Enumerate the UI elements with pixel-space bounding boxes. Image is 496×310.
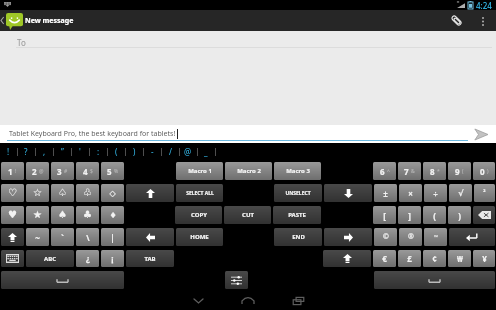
button[interactable]: ◇ [101, 184, 124, 202]
button[interactable] [324, 184, 372, 202]
button[interactable]: ¿ [76, 250, 99, 267]
button[interactable]: 4 [76, 162, 99, 180]
button[interactable]: @ [182, 143, 194, 160]
button[interactable]: \ [76, 228, 99, 246]
button[interactable]: 7 [398, 162, 421, 180]
button[interactable] [323, 250, 371, 267]
button[interactable]: ★ [26, 206, 49, 224]
button[interactable]: ± [374, 184, 397, 202]
button[interactable]: ♠ [51, 206, 74, 224]
button[interactable]: ♧ [76, 184, 99, 202]
button[interactable] [324, 228, 372, 246]
button[interactable]: CUT [224, 206, 271, 224]
staticText: £ [407, 253, 412, 264]
button[interactable]: Macro 3 [274, 162, 321, 180]
button[interactable]: × [399, 184, 422, 202]
button[interactable]: ( [110, 143, 122, 160]
button[interactable]: SELECT ALL [176, 184, 223, 202]
button[interactable]: ™ [424, 228, 447, 246]
button[interactable]: Hide keyboard [180, 291, 216, 310]
button[interactable]: ☆ [26, 184, 49, 202]
staticText: ” [61, 146, 64, 157]
button[interactable]: Recents [280, 291, 316, 310]
button[interactable]: 6 [373, 162, 396, 180]
button[interactable]: : [92, 143, 104, 160]
button[interactable]: 3 [51, 162, 74, 180]
button[interactable]: Attach [446, 10, 467, 31]
button[interactable]: 2 [26, 162, 49, 180]
button[interactable]: ? [20, 143, 32, 160]
button[interactable]: PASTE [273, 206, 321, 224]
button[interactable]: ® [399, 228, 422, 246]
staticText: ' [79, 146, 81, 157]
button[interactable]: Home [230, 291, 266, 310]
button[interactable]: ♤ [51, 184, 74, 202]
staticText: × [408, 188, 413, 199]
button[interactable]: 1 [1, 162, 24, 180]
button[interactable]: √ [449, 184, 472, 202]
button[interactable] [126, 228, 174, 246]
button[interactable]: ~ [26, 228, 49, 246]
button[interactable]: ABC [26, 250, 74, 267]
button[interactable] [1, 271, 124, 289]
button[interactable]: Macro 2 [225, 162, 272, 180]
button[interactable]: / [164, 143, 176, 160]
button[interactable]: HOME [176, 228, 223, 246]
button[interactable] [225, 271, 248, 289]
button[interactable]: 5 [101, 162, 124, 180]
button[interactable]: ♣ [76, 206, 99, 224]
button[interactable]: Back [0, 10, 5, 31]
button[interactable]: To [0, 37, 496, 47]
staticText: ☆ [33, 187, 42, 199]
button[interactable] [473, 206, 495, 224]
staticText: Macro 1 [188, 167, 212, 175]
button[interactable]: ♡ [1, 184, 24, 202]
button[interactable]: ` [51, 228, 74, 246]
button[interactable]: COPY [175, 206, 222, 224]
button[interactable]: 0 [473, 162, 495, 180]
button[interactable]: TAB [126, 250, 174, 267]
button[interactable]: ² [474, 184, 495, 202]
button[interactable]: , [38, 143, 50, 160]
button[interactable]: ¡ [101, 250, 124, 267]
button[interactable]: ÷ [424, 184, 447, 202]
button[interactable]: Macro 1 [176, 162, 223, 180]
button[interactable] [449, 228, 495, 246]
button[interactable]: ' [74, 143, 86, 160]
staticText: ) [487, 168, 489, 175]
button[interactable]: Send [467, 125, 495, 143]
staticText: ± [383, 188, 388, 199]
button[interactable]: UNSELECT [274, 184, 322, 202]
button[interactable]: ! [2, 143, 14, 160]
button[interactable]: ] [398, 206, 421, 224]
button[interactable]: ) [128, 143, 140, 160]
button[interactable]: ” [56, 143, 68, 160]
button[interactable]: More options [475, 13, 491, 29]
button[interactable]: ) [448, 206, 471, 224]
button[interactable]: ( [423, 206, 446, 224]
button[interactable] [126, 184, 174, 202]
button[interactable]: ¥ [473, 250, 495, 267]
button[interactable]: 8 [423, 162, 446, 180]
button[interactable]: - [146, 143, 158, 160]
button[interactable]: END [274, 228, 322, 246]
staticText: Macro 2 [237, 167, 261, 175]
button[interactable]: ¢ [423, 250, 446, 267]
staticText: 0 [480, 166, 485, 177]
button[interactable]: | [101, 228, 124, 246]
staticText: TAB [144, 255, 156, 263]
button[interactable] [1, 250, 24, 267]
button[interactable]: ♦ [101, 206, 124, 224]
button[interactable] [374, 271, 495, 289]
button[interactable]: £ [398, 250, 421, 267]
button[interactable]: _ [200, 143, 212, 160]
button[interactable]: [ [373, 206, 396, 224]
button[interactable]: € [373, 250, 396, 267]
button[interactable]: ♥ [1, 206, 24, 224]
button[interactable] [1, 228, 24, 246]
staticText: ♥ [8, 209, 17, 221]
button[interactable]: © [374, 228, 397, 246]
staticText: ¢ [432, 253, 437, 264]
button[interactable]: ₩ [448, 250, 471, 267]
button[interactable]: 9 [448, 162, 471, 180]
